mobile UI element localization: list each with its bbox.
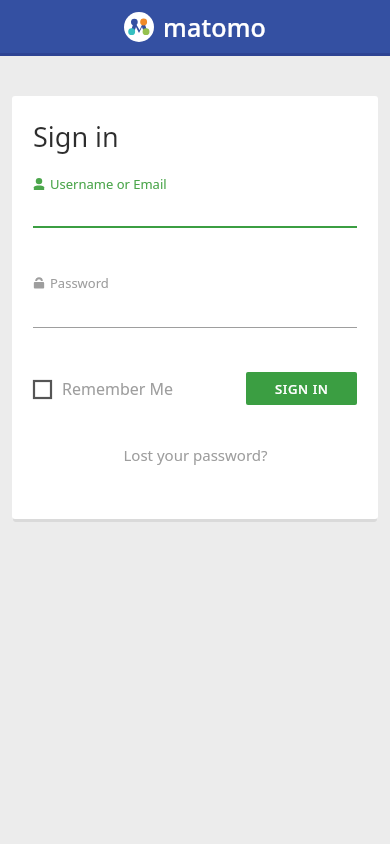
- other: Password: [33, 277, 45, 289]
- staticText: Username or Email: [50, 175, 167, 193]
- staticText: matomo: [163, 10, 266, 44]
- staticText: Lost your password?: [123, 445, 268, 465]
- staticText: Remember Me: [62, 378, 174, 400]
- button[interactable]: Remember Me: [33, 378, 174, 400]
- other: User: [33, 178, 45, 190]
- button[interactable]: Lost your password?: [123, 445, 268, 465]
- staticText: SIGN IN: [275, 380, 329, 398]
- staticText: Sign in: [33, 118, 119, 155]
- staticText: Password: [50, 274, 109, 292]
- button[interactable]: SIGN IN: [246, 372, 357, 405]
